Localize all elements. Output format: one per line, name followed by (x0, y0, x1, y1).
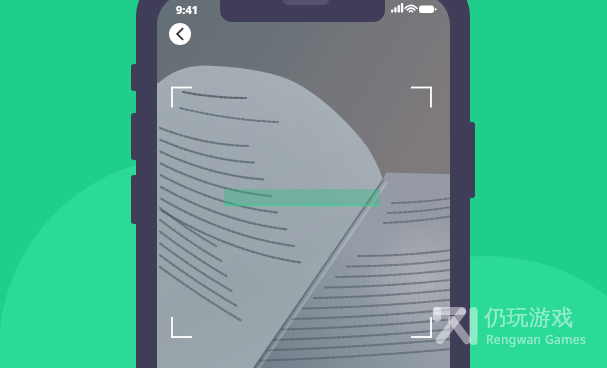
staticText: 仍玩游戏 (484, 304, 574, 332)
staticText: 9:41 (176, 2, 198, 17)
button[interactable]: Back (169, 23, 191, 45)
staticText: Rengwan Games (486, 331, 587, 347)
